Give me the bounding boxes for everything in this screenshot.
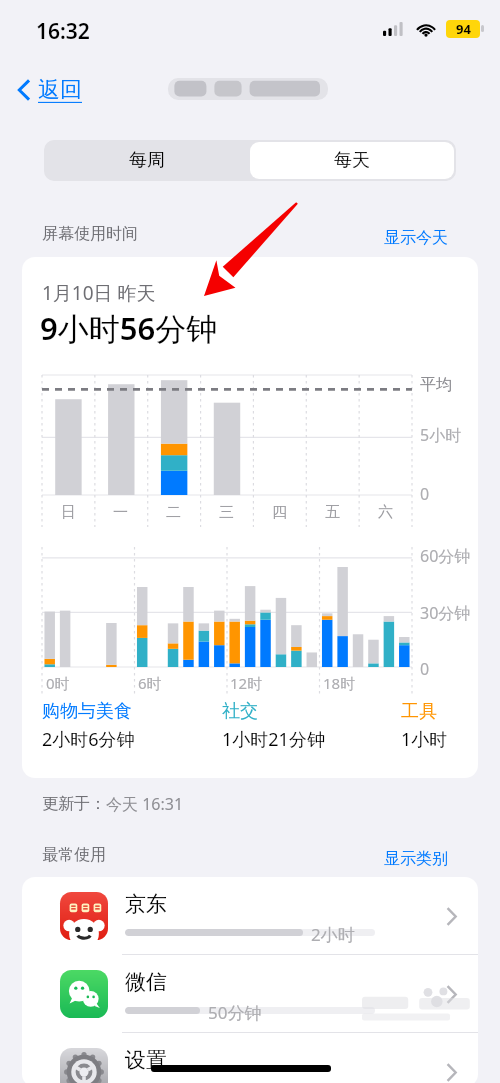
staticText: 六 [378, 503, 393, 522]
staticText: 16:32 [36, 17, 90, 46]
staticText: 二 [166, 503, 181, 522]
staticText: 今天 16:31 [106, 793, 184, 815]
staticText: 平均 [420, 375, 452, 395]
staticText: 三 [219, 503, 234, 522]
staticText: 94 [456, 20, 471, 38]
button[interactable]: 显示今天 [380, 224, 452, 250]
staticText: 微信 [125, 969, 167, 995]
button[interactable]: 显示类别 [380, 845, 452, 871]
staticText: 一 [113, 503, 128, 522]
other: 京东 详情 [446, 907, 457, 926]
staticText: 五 [325, 503, 340, 522]
button[interactable]: 京东 [22, 877, 478, 955]
staticText: 京东 [125, 891, 167, 917]
staticText: 0 [420, 658, 430, 680]
staticText: 社交 [222, 700, 258, 723]
staticText: 购物与美食 [42, 700, 132, 723]
staticText: 0时 [46, 673, 70, 693]
staticText: 2小时 [311, 923, 355, 946]
staticText: 最常使用 [42, 845, 106, 865]
other: 微信 详情 [446, 985, 457, 1004]
staticText: 显示类别 [384, 849, 448, 867]
staticText: 设置 [125, 1047, 167, 1073]
staticText: 9小时56分钟 [40, 307, 218, 349]
button[interactable]: 每天 [250, 142, 454, 179]
staticText: 30分钟 [420, 602, 471, 624]
staticText: 18时 [323, 673, 356, 693]
staticText: 1小时21分钟 [222, 727, 325, 752]
staticText: 60分钟 [420, 545, 471, 567]
other: 设置 详情 [446, 1063, 457, 1082]
staticText: 50分钟 [208, 1001, 262, 1024]
staticText: 5小时 [420, 424, 462, 446]
staticText: 2小时6分钟 [42, 727, 135, 752]
button[interactable]: 设置 [22, 1033, 478, 1083]
staticText: 12时 [230, 673, 263, 693]
staticText: 返回 [38, 76, 82, 104]
button[interactable]: 微信 [22, 955, 478, 1033]
staticText: 1小时 [401, 727, 448, 752]
staticText: 更新于： [42, 794, 106, 814]
staticText: 1月10日 昨天 [42, 280, 156, 306]
staticText: 屏幕使用时间 [42, 224, 138, 244]
staticText: 每天 [334, 149, 370, 172]
button[interactable]: 每周 [44, 140, 250, 181]
staticText: 6时 [138, 673, 162, 693]
staticText: 日 [61, 503, 76, 522]
staticText: 四 [272, 503, 287, 522]
staticText: 每周 [129, 149, 165, 172]
staticText: 0 [420, 483, 430, 505]
button[interactable]: 返回 [14, 70, 86, 110]
staticText: 显示今天 [384, 228, 448, 246]
staticText: 工具 [401, 700, 437, 723]
